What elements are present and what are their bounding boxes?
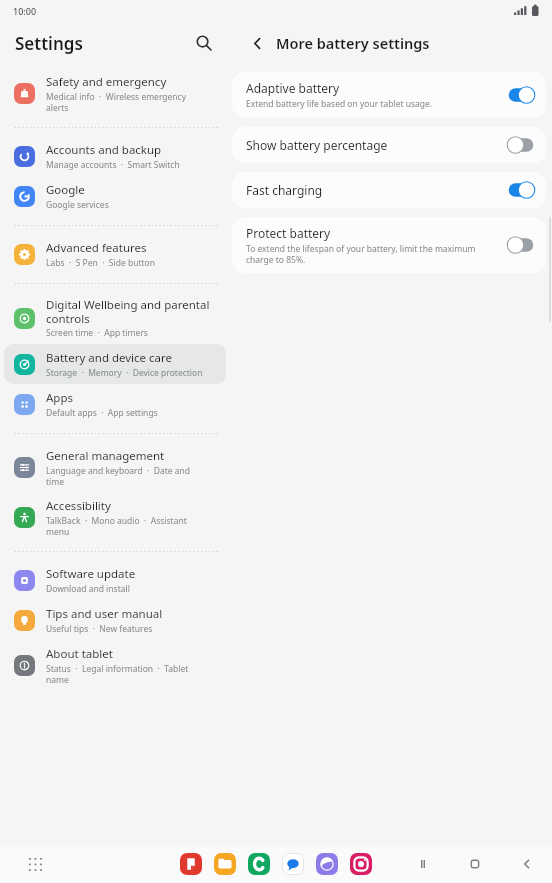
button[interactable]: Toggle on (506, 181, 536, 199)
button[interactable]: Tips and user manual (4, 600, 226, 640)
button[interactable]: Accounts and backup (4, 136, 226, 176)
button[interactable]: notes (180, 853, 202, 875)
staticText: Fast charging (246, 182, 323, 198)
staticText: Download and install (46, 583, 130, 595)
button[interactable]: Show battery percentage (232, 127, 546, 163)
staticText: More battery settings (276, 33, 430, 53)
staticText: Protect battery (246, 225, 331, 241)
staticText: Tips and user manual (46, 606, 163, 622)
button[interactable]: Home (464, 853, 486, 875)
staticText: Extend battery life based on your tablet… (246, 98, 433, 110)
staticText: Accounts and backup (46, 142, 162, 158)
staticText: Digital Wellbeing and parental controls (46, 297, 210, 326)
button[interactable]: messages (282, 853, 304, 875)
staticText: Google services (46, 199, 109, 211)
staticText: Useful tips · New features (46, 623, 153, 635)
button[interactable]: internet (316, 853, 338, 875)
button[interactable]: General management (4, 442, 226, 492)
staticText: Software update (46, 566, 136, 582)
staticText: Google (46, 182, 85, 198)
button[interactable]: Battery and device care (4, 344, 226, 384)
staticText: Battery and device care (46, 350, 173, 366)
button[interactable]: phone (248, 853, 270, 875)
button[interactable]: Fast charging (232, 172, 546, 208)
button[interactable]: About tablet (4, 640, 226, 690)
staticText: Screen time · App timers (46, 327, 148, 339)
button[interactable]: Toggle off (506, 236, 536, 254)
staticText: Language and keyboard · Date and time (46, 465, 191, 487)
staticText: 10:00 (13, 5, 37, 17)
staticText: Accessibility (46, 498, 111, 514)
staticText: Default apps · App settings (46, 407, 158, 419)
staticText: Medical info · Wireless emergency alerts (46, 91, 187, 113)
staticText: Advanced features (46, 240, 147, 256)
staticText: TalkBack · Mono audio · Assistant menu (46, 515, 187, 537)
button[interactable]: Toggle off (506, 136, 536, 154)
button[interactable]: Toggle on (506, 86, 536, 104)
button[interactable]: Apps (4, 384, 226, 424)
button[interactable]: files (214, 853, 236, 875)
staticText: To extend the lifespan of your battery, … (246, 243, 476, 265)
staticText: Storage · Memory · Device protection (46, 367, 203, 379)
button[interactable]: Google (4, 176, 226, 216)
button[interactable]: Advanced features (4, 234, 226, 274)
staticText: Manage accounts · Smart Switch (46, 159, 180, 171)
staticText: About tablet (46, 646, 113, 662)
button[interactable]: insta (350, 853, 372, 875)
staticText: Apps (46, 390, 74, 406)
button[interactable]: Apps (24, 853, 46, 875)
button[interactable]: Back (516, 853, 538, 875)
staticText: Status · Legal information · Tablet name (46, 663, 189, 685)
button[interactable]: Search (190, 29, 218, 57)
button[interactable]: Safety and emergency (4, 68, 226, 118)
button[interactable]: Protect battery (232, 217, 546, 273)
button[interactable]: Adaptive battery (232, 72, 546, 118)
staticText: Safety and emergency (46, 74, 167, 90)
button[interactable]: Accessibility (4, 492, 226, 542)
button[interactable]: Software update (4, 560, 226, 600)
staticText: Settings (15, 32, 83, 55)
button[interactable]: Back (244, 30, 270, 56)
staticText: Labs · S Pen · Side button (46, 257, 155, 269)
staticText: Show battery percentage (246, 137, 388, 153)
staticText: Adaptive battery (246, 80, 340, 96)
button[interactable]: Digital Wellbeing and parental controls (4, 292, 226, 344)
staticText: General management (46, 448, 165, 464)
button[interactable]: Recents (412, 853, 434, 875)
